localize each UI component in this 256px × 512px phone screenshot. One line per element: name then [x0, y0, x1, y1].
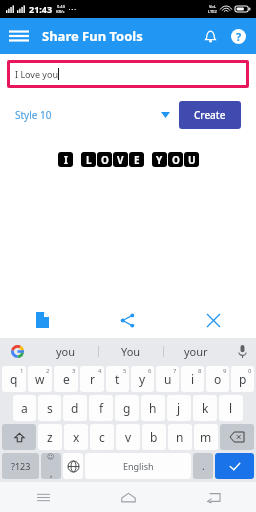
button[interactable]: you [34, 338, 98, 364]
button[interactable]: k [193, 395, 217, 421]
staticText: t [115, 371, 120, 387]
staticText: 7 [173, 367, 177, 375]
button[interactable]: n [168, 424, 192, 450]
button[interactable]: Back [171, 482, 256, 512]
staticText: 9 [223, 367, 227, 375]
button[interactable]: Create [179, 101, 241, 129]
button[interactable]: r [80, 366, 104, 392]
staticText: 2 [46, 367, 50, 375]
button[interactable]: Close [170, 302, 256, 338]
staticText: V [117, 153, 124, 167]
staticText: 0.40 [57, 4, 65, 9]
button[interactable]: I Love you [10, 63, 246, 85]
staticText: you [56, 344, 76, 359]
staticText: f [99, 400, 104, 416]
button[interactable]: Recents [0, 482, 86, 512]
button[interactable]: m [194, 424, 218, 450]
button[interactable]: d [63, 395, 87, 421]
button[interactable]: a [13, 395, 36, 421]
staticText: r [90, 371, 95, 387]
staticText: a [21, 400, 28, 416]
button[interactable]: t [106, 366, 129, 392]
staticText: 3 [72, 367, 76, 375]
staticText: c [99, 429, 105, 445]
staticText: O [101, 153, 109, 167]
button[interactable]: Help [224, 22, 253, 51]
button[interactable]: p [231, 366, 254, 392]
staticText: w [35, 371, 45, 387]
staticText: y [139, 371, 146, 387]
button[interactable]: Voice input [228, 338, 256, 364]
button[interactable]: f [89, 395, 113, 421]
staticText: 21:43 [29, 3, 53, 15]
button[interactable]: Notifications [197, 23, 224, 50]
staticText: U [188, 153, 196, 167]
button[interactable]: x [64, 424, 88, 450]
staticText: d [71, 400, 79, 416]
staticText: I [64, 153, 68, 167]
button[interactable]: Change language [63, 453, 83, 479]
staticText: q [10, 371, 18, 387]
button[interactable]: Backspace [220, 424, 254, 450]
staticText: Style 10 [15, 108, 52, 122]
staticText: i [191, 371, 195, 387]
button[interactable]: Emoji and comma [41, 453, 61, 479]
staticText: your [184, 344, 208, 359]
staticText: 4 [98, 367, 102, 375]
button[interactable]: ?123 [2, 453, 39, 479]
staticText: Create [194, 108, 226, 122]
button[interactable]: Style 10 [15, 95, 179, 135]
staticText: x [73, 429, 80, 445]
button[interactable]: q [2, 366, 26, 392]
staticText: L [86, 153, 92, 167]
staticText: I Love you [15, 68, 58, 80]
button[interactable]: Share [84, 302, 170, 338]
staticText: l [229, 400, 233, 416]
button[interactable]: your [164, 338, 228, 364]
button[interactable]: z [38, 424, 62, 450]
staticText: g [123, 400, 131, 416]
staticText: KB/s [56, 9, 65, 14]
staticText: v [125, 429, 132, 445]
staticText: ? [236, 29, 242, 44]
button[interactable]: Menu [0, 21, 38, 51]
button[interactable]: Google [0, 338, 34, 364]
button[interactable]: English [85, 453, 191, 479]
staticText: u [164, 371, 172, 387]
staticText: p [239, 371, 247, 387]
button[interactable]: b [142, 424, 166, 450]
button[interactable]: l [219, 395, 243, 421]
staticText: m [200, 429, 212, 445]
button[interactable]: Enter [215, 453, 254, 479]
staticText: VoL [209, 4, 216, 9]
staticText: 8 [198, 367, 202, 375]
staticText: h [149, 400, 157, 416]
staticText: LTE2 [208, 9, 217, 14]
button[interactable]: u [156, 366, 179, 392]
button[interactable]: j [167, 395, 191, 421]
staticText: n [176, 429, 184, 445]
staticText: 6 [148, 367, 152, 375]
button[interactable]: You [99, 338, 163, 364]
staticText: Y [156, 153, 163, 167]
button[interactable]: s [38, 395, 61, 421]
button[interactable]: i [181, 366, 204, 392]
button[interactable]: h [141, 395, 165, 421]
button[interactable]: g [115, 395, 139, 421]
staticText: o [214, 371, 222, 387]
button[interactable]: w [28, 366, 52, 392]
staticText: s [47, 400, 53, 416]
button[interactable]: y [131, 366, 154, 392]
button[interactable]: o [206, 366, 229, 392]
staticText: k [202, 400, 209, 416]
staticText: E [134, 153, 140, 167]
button[interactable]: Home [86, 482, 171, 512]
button[interactable]: e [54, 366, 78, 392]
staticText: English [123, 460, 154, 472]
button[interactable]: Copy [0, 304, 84, 336]
button[interactable]: c [90, 424, 114, 450]
staticText: 0 [248, 367, 252, 375]
button[interactable]: . [193, 453, 213, 479]
button[interactable]: Shift [2, 424, 36, 450]
button[interactable]: v [116, 424, 140, 450]
